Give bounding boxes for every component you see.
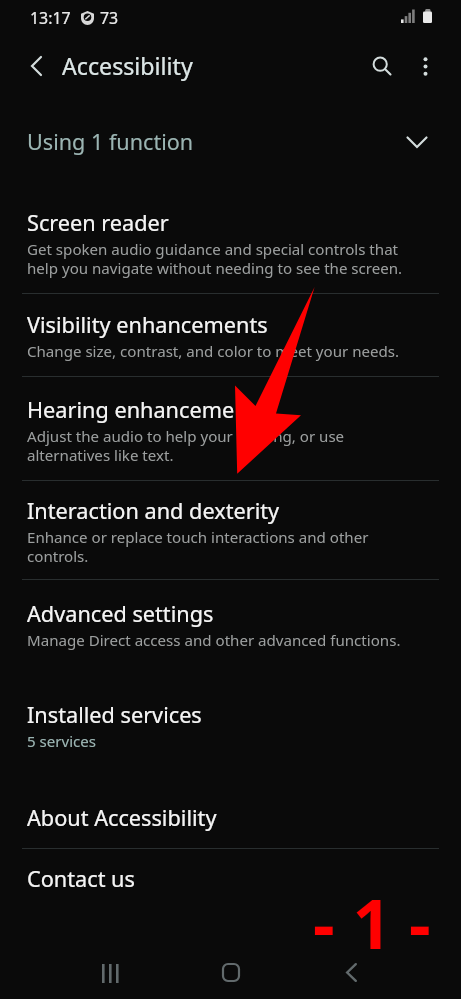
staticText: About Accessibility [27,803,217,833]
button[interactable]: Navigate up [12,42,60,90]
staticText: - 1 - [313,876,431,969]
staticText: Advanced settings [27,599,214,629]
staticText: Installed services [27,700,202,730]
staticText: 5 services [27,732,97,751]
button[interactable]: Visibility enhancements [0,310,461,361]
staticText: 73 [100,7,119,29]
staticText: Contact us [27,864,135,894]
staticText: Manage Direct access and other advanced … [27,631,401,650]
staticText: Visibility enhancements [27,310,268,340]
button[interactable]: Home [195,936,267,999]
staticText: Screen reader [27,208,169,238]
button[interactable]: Back [315,936,387,999]
button[interactable]: Using 1 function [0,114,461,172]
staticText: Get spoken audio guidance and special co… [27,240,417,278]
button[interactable]: Hearing enhancements [0,395,461,465]
staticText: 13:17 [30,7,71,29]
staticText: Accessibility [62,50,193,82]
button[interactable]: Contact us [0,864,461,894]
button[interactable]: Advanced settings [0,599,461,650]
staticText: Change size, contrast, and color to meet… [27,342,400,361]
button[interactable]: Interaction and dexterity [0,496,461,566]
button[interactable]: Search [358,42,406,90]
button[interactable]: About Accessibility [0,803,461,833]
staticText: Adjust the audio to help your hearing, o… [27,427,417,465]
button[interactable]: Recent apps [75,937,147,999]
button[interactable]: More options [401,42,449,90]
staticText: Enhance or replace touch interactions an… [27,528,417,566]
staticText: Hearing enhancements [27,395,266,425]
staticText: Interaction and dexterity [27,496,280,526]
button[interactable]: Screen reader [0,208,461,278]
button[interactable]: Installed services [0,700,461,751]
staticText: Using 1 function [27,127,194,156]
